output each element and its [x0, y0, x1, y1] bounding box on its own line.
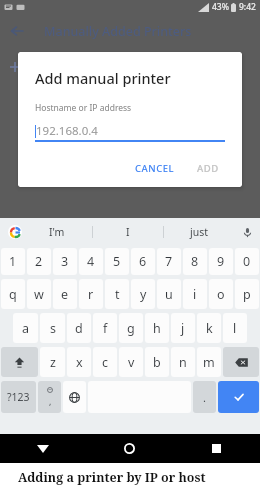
staticText: 4: [87, 253, 95, 270]
button[interactable]: p: [235, 279, 259, 309]
staticText: q: [9, 286, 17, 303]
button[interactable]: z: [40, 347, 65, 377]
button[interactable]: r: [79, 279, 103, 309]
staticText: x: [76, 354, 83, 371]
staticText: n: [179, 354, 187, 371]
staticText: o: [217, 286, 225, 303]
button[interactable]: just: [164, 218, 234, 246]
staticText: I'm: [49, 225, 65, 239]
button[interactable]: I'm: [22, 218, 92, 246]
button[interactable]: m: [197, 347, 221, 377]
button[interactable]: q: [1, 279, 25, 309]
staticText: 9: [217, 253, 225, 270]
button[interactable]: g: [119, 313, 143, 343]
staticText: 6: [139, 253, 147, 270]
button[interactable]: l: [223, 313, 247, 343]
staticText: just: [190, 225, 209, 239]
button[interactable]: CANCEL: [129, 158, 181, 179]
button[interactable]: Enter: [218, 381, 259, 413]
button[interactable]: Shift: [1, 347, 38, 377]
button[interactable]: 6: [131, 248, 155, 275]
staticText: k: [206, 320, 213, 337]
staticText: j: [181, 320, 185, 337]
staticText: I: [126, 225, 130, 239]
staticText: CANCEL: [135, 162, 175, 175]
button[interactable]: 5: [105, 248, 129, 275]
button[interactable]: x: [67, 347, 91, 377]
staticText: g: [127, 320, 135, 337]
button[interactable]: Symbols: [1, 381, 36, 413]
button[interactable]: n: [171, 347, 195, 377]
staticText: e: [61, 286, 69, 303]
button[interactable]: I: [93, 218, 163, 246]
staticText: f: [103, 320, 108, 337]
button[interactable]: t: [105, 279, 129, 309]
staticText: 1: [9, 253, 17, 270]
staticText: ADD: [197, 162, 219, 175]
button[interactable]: f: [93, 313, 117, 343]
staticText: Manually Added Printers: [44, 23, 192, 40]
staticText: Add manual printer: [35, 68, 171, 88]
staticText: .: [203, 390, 206, 405]
button[interactable]: Backspace: [223, 347, 259, 377]
button[interactable]: Voice input: [234, 218, 260, 246]
staticText: 7: [165, 253, 173, 270]
staticText: b: [153, 354, 161, 371]
staticText: m: [203, 354, 215, 371]
staticText: u: [165, 286, 173, 303]
button[interactable]: j: [171, 313, 195, 343]
button[interactable]: i: [183, 279, 207, 309]
button[interactable]: 8: [183, 248, 207, 275]
staticText: v: [128, 354, 135, 371]
staticText: 0: [243, 253, 251, 270]
button[interactable]: y: [131, 279, 155, 309]
button[interactable]: e: [53, 279, 77, 309]
button[interactable]: 3: [53, 248, 77, 275]
button[interactable]: o: [209, 279, 233, 309]
button[interactable]: 9: [209, 248, 233, 275]
staticText: 5: [113, 253, 121, 270]
button[interactable]: Period: [193, 381, 216, 413]
button[interactable]: Back: [0, 14, 34, 48]
staticText: ,: [49, 395, 52, 407]
staticText: y: [140, 286, 147, 303]
staticText: r: [88, 286, 94, 303]
staticText: 2: [35, 253, 43, 270]
button[interactable]: v: [119, 347, 143, 377]
staticText: 9:42: [239, 1, 256, 13]
button[interactable]: k: [197, 313, 221, 343]
staticText: z: [50, 354, 56, 371]
button[interactable]: Emoji and comma: [38, 381, 61, 413]
button[interactable]: Back: [0, 434, 86, 463]
staticText: h: [153, 320, 161, 337]
staticText: l: [233, 320, 237, 337]
button[interactable]: Home: [86, 434, 173, 463]
button[interactable]: b: [145, 347, 169, 377]
staticText: c: [102, 354, 109, 371]
button[interactable]: 1: [1, 248, 25, 275]
button[interactable]: u: [157, 279, 181, 309]
staticText: ?123: [7, 390, 30, 404]
button[interactable]: s: [40, 313, 65, 343]
button[interactable]: Google: [8, 225, 22, 239]
staticText: d: [75, 320, 83, 337]
button[interactable]: d: [67, 313, 91, 343]
staticText: i: [193, 286, 197, 303]
button[interactable]: Change language: [63, 381, 86, 413]
button[interactable]: 2: [27, 248, 51, 275]
staticText: a: [22, 320, 30, 337]
staticText: 43%: [212, 1, 229, 13]
staticText: t: [115, 286, 120, 303]
button[interactable]: a: [13, 313, 38, 343]
staticText: p: [243, 286, 251, 303]
button[interactable]: 7: [157, 248, 181, 275]
button[interactable]: h: [145, 313, 169, 343]
button[interactable]: c: [93, 347, 117, 377]
button[interactable]: ADD: [191, 158, 225, 179]
button[interactable]: 4: [79, 248, 103, 275]
staticText: 192.168.0.4: [36, 123, 98, 139]
button[interactable]: w: [27, 279, 51, 309]
button[interactable]: Recents: [173, 434, 260, 463]
button[interactable]: 0: [235, 248, 259, 275]
